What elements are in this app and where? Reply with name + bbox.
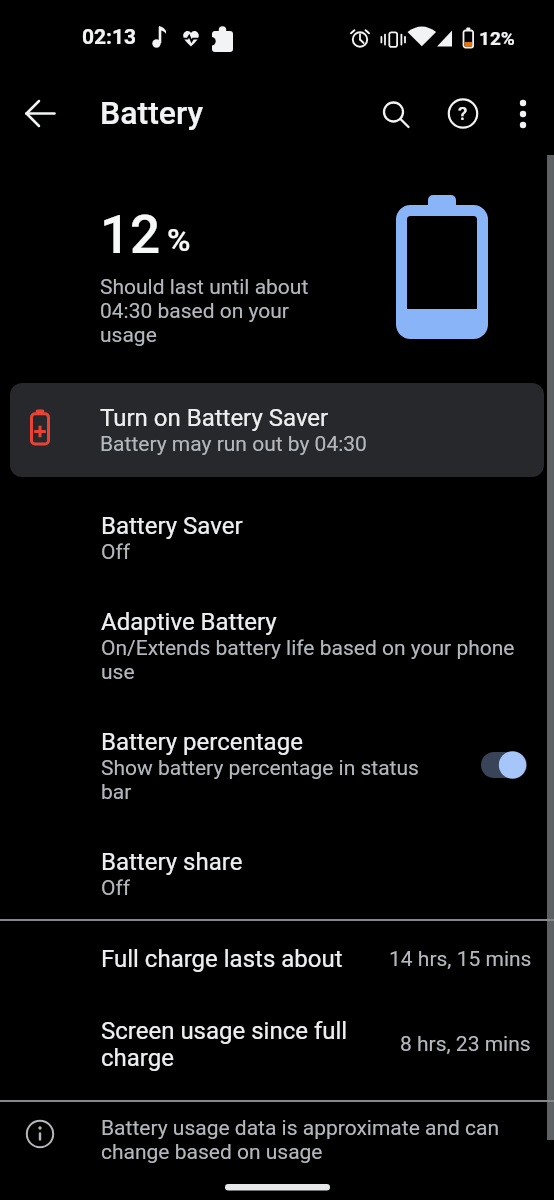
- button[interactable]: Battery percentage: [0, 712, 554, 808]
- button[interactable]: Screen usage since full charge: [0, 1005, 554, 1085]
- staticText: Adaptive Battery: [101, 608, 277, 636]
- staticText: 02:13: [82, 25, 137, 50]
- staticText: Battery may run out by 04:30: [100, 432, 367, 457]
- button[interactable]: Battery Saver: [0, 496, 554, 572]
- button[interactable]: Battery usage data is approximate and ca…: [0, 1104, 554, 1176]
- button[interactable]: Turn on Battery Saver: [10, 383, 544, 477]
- button[interactable]: Battery share: [0, 832, 554, 904]
- staticText: Screen usage since full charge: [101, 1017, 348, 1072]
- staticText: Full charge lasts about: [101, 945, 343, 973]
- button[interactable]: [501, 91, 545, 135]
- staticText: Turn on Battery Saver: [100, 404, 329, 432]
- button[interactable]: [18, 92, 62, 136]
- staticText: Off: [101, 540, 131, 565]
- staticText: Battery usage data is approximate and ca…: [101, 1116, 500, 1164]
- staticText: Battery: [100, 94, 204, 132]
- staticText: Show battery percentage in status bar: [101, 756, 419, 804]
- staticText: 12: [100, 204, 161, 266]
- staticText: 14 hrs, 15 mins: [389, 947, 532, 972]
- button[interactable]: [471, 741, 535, 789]
- staticText: On/Extends battery life based on your ph…: [101, 636, 515, 684]
- staticText: Battery percentage: [101, 728, 303, 756]
- button[interactable]: Adaptive Battery: [0, 592, 554, 688]
- button[interactable]: [372, 91, 416, 135]
- staticText: Battery share: [101, 848, 243, 876]
- staticText: ?: [458, 102, 468, 124]
- staticText: 12%: [479, 27, 515, 49]
- staticText: Should last until about 04:30 based on y…: [100, 275, 309, 347]
- staticText: Off: [101, 876, 131, 901]
- staticText: Battery Saver: [101, 512, 243, 540]
- button[interactable]: ?: [441, 91, 485, 135]
- staticText: 8 hrs, 23 mins: [400, 1032, 531, 1057]
- button[interactable]: Full charge lasts about: [0, 931, 554, 991]
- staticText: %: [167, 221, 191, 259]
